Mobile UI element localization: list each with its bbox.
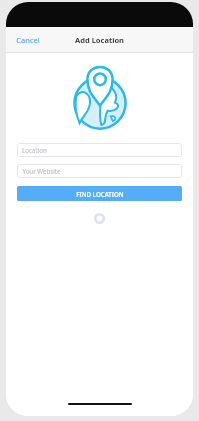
staticText: Location [22, 146, 47, 154]
button[interactable]: Location [17, 143, 182, 157]
button[interactable]: Cancel [6, 31, 50, 49]
button[interactable]: Your Website [17, 164, 182, 178]
button[interactable]: FIND LOCATION [17, 186, 182, 201]
staticText: Cancel [16, 35, 40, 45]
staticText: Add Location [75, 35, 124, 45]
other: Location globe [64, 61, 136, 133]
staticText: Your Website [22, 167, 61, 175]
staticText: FIND LOCATION [76, 190, 124, 198]
